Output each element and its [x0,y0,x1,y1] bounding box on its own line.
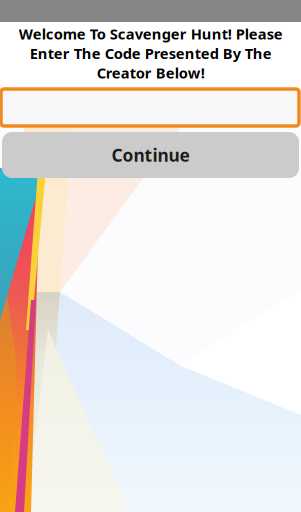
staticText: Welcome To Scavenger Hunt! Please Enter … [18,24,282,82]
staticText: Continue [111,143,189,166]
button[interactable]: Continue [2,132,299,178]
